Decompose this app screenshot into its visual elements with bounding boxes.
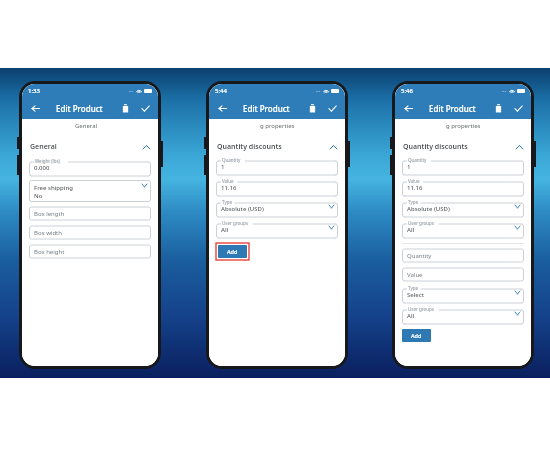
staticText: Absolute (USD)	[221, 205, 264, 213]
staticText: 5:44	[215, 87, 227, 95]
staticText: g properties	[446, 122, 481, 130]
staticText: Edit Product	[56, 103, 103, 114]
staticText: Quantity	[408, 157, 427, 163]
staticText: Edit Product	[429, 103, 476, 114]
staticText: Quantity discounts	[403, 142, 468, 152]
button[interactable]: Save	[511, 101, 525, 115]
button[interactable]: Box width	[29, 225, 151, 240]
staticText: 0.000	[34, 164, 50, 172]
staticText: g properties	[260, 122, 295, 130]
button[interactable]: Weight (lbs)	[29, 158, 151, 177]
staticText: 11.16	[221, 184, 237, 192]
staticText: ...	[316, 87, 321, 94]
button[interactable]: Type	[216, 199, 338, 218]
button[interactable]: Type	[402, 199, 524, 218]
staticText: All	[221, 226, 229, 234]
staticText: 1	[407, 163, 411, 171]
button[interactable]: Quantity discounts	[209, 138, 345, 156]
staticText: Value	[222, 178, 234, 184]
staticText: Add	[411, 332, 422, 339]
staticText: General	[75, 122, 98, 130]
staticText: Type	[408, 285, 419, 291]
staticText: Value	[408, 178, 420, 184]
button[interactable]: Back	[401, 101, 415, 115]
button[interactable]: Type	[402, 285, 524, 304]
button[interactable]: General	[22, 119, 154, 135]
staticText: Box height	[34, 248, 65, 256]
staticText: ...	[129, 87, 134, 94]
staticText: All	[407, 312, 415, 320]
staticText: Type	[408, 199, 419, 205]
staticText: General	[30, 142, 57, 152]
staticText: Quantity	[407, 252, 432, 260]
button[interactable]: Delete	[118, 101, 132, 115]
staticText: ...	[502, 87, 507, 94]
staticText: Edit Product	[243, 103, 290, 114]
button[interactable]: Box height	[29, 244, 151, 259]
button[interactable]: User groups	[402, 306, 524, 325]
button[interactable]: Quantity	[402, 157, 524, 176]
staticText: 11.16	[407, 184, 423, 192]
staticText: Box width	[34, 229, 62, 237]
staticText: Quantity discounts	[217, 142, 282, 152]
staticText: Free shipping	[34, 184, 73, 192]
staticText: Quantity	[222, 157, 241, 163]
button[interactable]: g properties	[395, 119, 531, 135]
button[interactable]: Quantity	[216, 157, 338, 176]
button[interactable]: Save	[138, 101, 152, 115]
button[interactable]: Quantity discounts	[395, 138, 531, 156]
staticText: User groups	[408, 220, 434, 226]
button[interactable]: g properties	[209, 119, 345, 135]
button[interactable]: User groups	[216, 220, 338, 239]
button[interactable]: Value	[402, 178, 524, 197]
staticText: Box length	[34, 210, 65, 218]
staticText: No	[34, 192, 43, 200]
button[interactable]: Add	[402, 329, 431, 342]
button[interactable]: Add	[218, 245, 247, 258]
button[interactable]: Box length	[29, 206, 151, 221]
staticText: All	[407, 226, 415, 234]
button[interactable]: User groups	[402, 220, 524, 239]
staticText: 1	[221, 163, 225, 171]
staticText: Add	[227, 248, 238, 255]
staticText: 1:33	[28, 87, 40, 95]
button[interactable]: Back	[28, 101, 42, 115]
button[interactable]: Save	[325, 101, 339, 115]
button[interactable]: Value	[216, 178, 338, 197]
button[interactable]: Value	[402, 267, 524, 282]
button[interactable]: Free shipping	[29, 180, 151, 202]
staticText: 5:46	[401, 87, 413, 95]
button[interactable]: Delete	[305, 101, 319, 115]
staticText: User groups	[408, 306, 434, 312]
staticText: Absolute (USD)	[407, 205, 450, 213]
staticText: Type	[222, 199, 233, 205]
staticText: Weight (lbs)	[35, 158, 60, 164]
button[interactable]: Back	[215, 101, 229, 115]
button[interactable]: Delete	[491, 101, 505, 115]
button[interactable]: General	[22, 138, 158, 156]
staticText: Value	[407, 271, 423, 279]
staticText: Select	[407, 291, 425, 299]
staticText: User groups	[222, 220, 248, 226]
button[interactable]: Quantity	[402, 248, 524, 263]
